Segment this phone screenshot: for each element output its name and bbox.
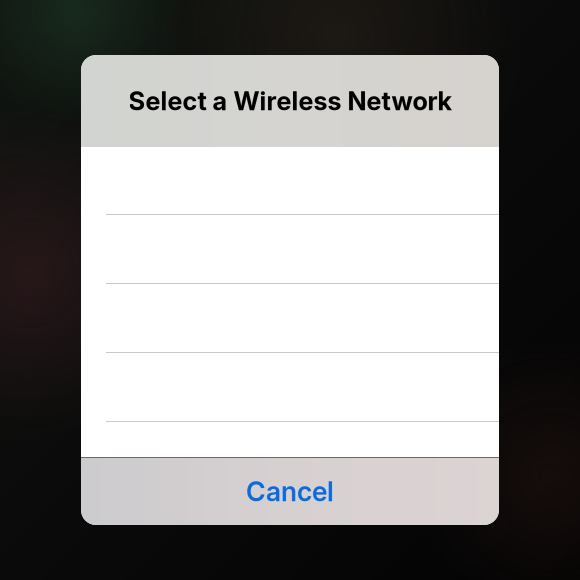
button[interactable]: Cancel — [81, 458, 499, 525]
staticText: Select a Wireless Network — [128, 86, 451, 116]
button[interactable]: Wireless network — [81, 284, 499, 353]
button[interactable]: Wireless network — [81, 147, 499, 215]
button[interactable]: Wireless network — [81, 353, 499, 422]
staticText: Cancel — [246, 475, 334, 508]
button[interactable]: Wireless network — [81, 215, 499, 284]
